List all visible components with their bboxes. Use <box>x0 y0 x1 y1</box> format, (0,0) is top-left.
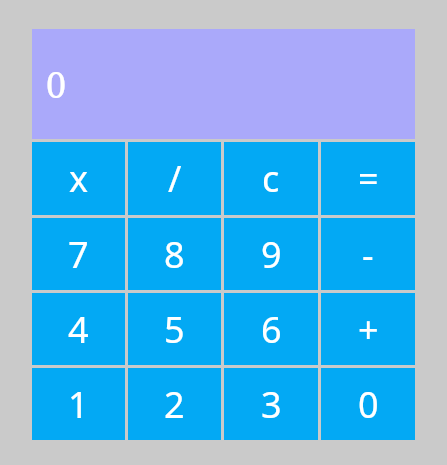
staticText: 3 <box>261 380 282 429</box>
button[interactable]: 6 <box>224 293 318 365</box>
staticText: x <box>69 154 89 203</box>
button[interactable]: / <box>128 142 221 215</box>
button[interactable]: 7 <box>32 218 125 290</box>
staticText: 6 <box>261 305 282 354</box>
staticText: c <box>262 154 280 203</box>
staticText: 4 <box>68 305 89 354</box>
button[interactable]: 9 <box>224 218 318 290</box>
staticText: 0 <box>46 60 67 109</box>
button[interactable]: + <box>321 293 415 365</box>
staticText: 7 <box>68 230 89 279</box>
button[interactable]: - <box>321 218 415 290</box>
staticText: 2 <box>164 380 185 429</box>
button[interactable]: 2 <box>128 368 221 440</box>
staticText: = <box>358 154 379 203</box>
staticText: - <box>362 230 374 279</box>
button[interactable]: 8 <box>128 218 221 290</box>
button[interactable]: 5 <box>128 293 221 365</box>
staticText: 5 <box>164 305 185 354</box>
staticText: 9 <box>261 230 282 279</box>
button[interactable]: 0 <box>321 368 415 440</box>
button[interactable]: x <box>32 142 125 215</box>
staticText: 8 <box>164 230 185 279</box>
button[interactable]: 3 <box>224 368 318 440</box>
staticText: 0 <box>358 380 379 429</box>
button[interactable]: 1 <box>32 368 125 440</box>
staticText: + <box>358 305 379 354</box>
button[interactable]: = <box>321 142 415 215</box>
staticText: / <box>168 154 182 203</box>
button[interactable]: 4 <box>32 293 125 365</box>
button[interactable]: c <box>224 142 318 215</box>
staticText: 1 <box>68 380 89 429</box>
